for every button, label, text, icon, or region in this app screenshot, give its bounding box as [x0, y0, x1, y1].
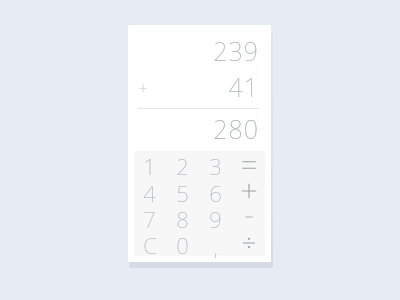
- staticText: 5: [176, 178, 190, 204]
- button[interactable]: 6: [199, 178, 232, 204]
- staticText: 280: [213, 112, 259, 146]
- staticText: 0: [176, 230, 190, 256]
- staticText: 6: [209, 178, 223, 204]
- button[interactable]: C: [134, 230, 166, 256]
- staticText: 1: [143, 151, 157, 178]
- staticText: 3: [209, 151, 223, 178]
- staticText: +: [138, 76, 149, 99]
- button[interactable]: 7: [134, 204, 166, 230]
- button[interactable]: 8: [166, 204, 199, 230]
- button[interactable]: 0: [166, 230, 199, 256]
- staticText: C: [143, 230, 158, 256]
- staticText: 8: [176, 204, 190, 230]
- button[interactable]: 2: [166, 151, 199, 178]
- button[interactable]: 3: [199, 151, 232, 178]
- button[interactable]: Equals: [232, 151, 265, 178]
- button[interactable]: 1: [134, 151, 166, 178]
- staticText: 4: [143, 178, 157, 204]
- button[interactable]: 4: [134, 178, 166, 204]
- button[interactable]: Minus: [232, 204, 265, 230]
- button[interactable]: 5: [166, 178, 199, 204]
- button[interactable]: Plus: [232, 178, 265, 204]
- staticText: 239: [213, 34, 259, 68]
- staticText: 9: [209, 204, 223, 230]
- staticText: 7: [143, 204, 157, 230]
- staticText: 2: [176, 151, 190, 178]
- button[interactable]: Divide: [232, 230, 265, 256]
- button[interactable]: 9: [199, 204, 232, 230]
- staticText: 41: [228, 70, 259, 104]
- staticText: ,: [213, 232, 219, 258]
